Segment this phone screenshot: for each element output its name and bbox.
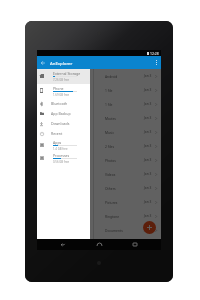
staticText: 2 files bbox=[105, 144, 115, 148]
staticText: Jan 3 bbox=[144, 158, 152, 162]
staticText: 0.56 GB free bbox=[53, 160, 70, 164]
staticText: Photos bbox=[105, 158, 116, 162]
staticText: Jan 3 bbox=[144, 172, 152, 176]
button[interactable]: Back bbox=[57, 239, 69, 250]
button[interactable]: 1 file bbox=[94, 83, 161, 97]
button[interactable]: Pictures bbox=[94, 195, 161, 209]
staticText: Music bbox=[105, 130, 115, 134]
staticText: Jan 3 bbox=[144, 144, 152, 148]
button[interactable]: Recent apps bbox=[129, 239, 141, 250]
staticText: 1 file bbox=[105, 102, 113, 106]
button[interactable]: Videos bbox=[94, 167, 161, 181]
staticText: 1.4 GB free bbox=[53, 147, 68, 151]
staticText: External Storage bbox=[53, 71, 81, 76]
staticText: Jan 3 bbox=[144, 228, 152, 232]
staticText: AnExplorer bbox=[50, 60, 73, 66]
button[interactable]: Movies bbox=[94, 111, 161, 125]
staticText: Jan 3 bbox=[144, 200, 152, 204]
button[interactable]: External Storage bbox=[37, 69, 90, 84]
button[interactable]: Android bbox=[94, 69, 161, 83]
button[interactable]: Navigate up bbox=[37, 56, 49, 69]
staticText: Jan 3 bbox=[144, 214, 152, 218]
staticText: Ringtone bbox=[105, 214, 120, 218]
button[interactable]: Phone bbox=[37, 84, 90, 98]
button[interactable]: 2 files bbox=[94, 139, 161, 153]
staticText: 1.69 GB free bbox=[53, 93, 70, 97]
staticText: Pictures bbox=[105, 200, 118, 204]
button[interactable]: Home bbox=[93, 239, 105, 250]
staticText: Documents bbox=[105, 228, 123, 232]
staticText: Jan 3 bbox=[144, 88, 152, 92]
staticText: App Backup bbox=[51, 111, 71, 116]
button[interactable]: Ringtone bbox=[94, 209, 161, 223]
staticText: 12:28 bbox=[150, 51, 159, 56]
button[interactable]: Recent bbox=[37, 128, 90, 138]
staticText: Bluetooth bbox=[51, 101, 68, 106]
staticText: Jan 3 bbox=[144, 130, 152, 134]
button[interactable]: Photos bbox=[94, 153, 161, 167]
button[interactable]: Downloads bbox=[37, 118, 90, 128]
staticText: Android bbox=[105, 74, 118, 78]
staticText: Others bbox=[105, 186, 116, 190]
button[interactable]: Apps bbox=[37, 138, 90, 151]
staticText: 1 file bbox=[105, 88, 113, 92]
button[interactable]: App Backup bbox=[37, 108, 90, 118]
staticText: Jan 3 bbox=[144, 186, 152, 190]
button[interactable]: Create new bbox=[143, 221, 156, 234]
button[interactable]: More options bbox=[152, 56, 161, 69]
button[interactable]: Bluetooth bbox=[37, 98, 90, 108]
staticText: Processes bbox=[53, 153, 70, 158]
staticText: Apps bbox=[53, 140, 62, 145]
staticText: Jan 3 bbox=[144, 116, 152, 120]
button[interactable]: Documents bbox=[94, 223, 161, 237]
staticText: Jan 3 bbox=[144, 74, 152, 78]
staticText: Phone bbox=[53, 86, 64, 91]
staticText: Jan 3 bbox=[144, 102, 152, 106]
button[interactable]: Others bbox=[94, 181, 161, 195]
staticText: Videos bbox=[105, 172, 116, 176]
staticText: Movies bbox=[105, 116, 116, 120]
button[interactable]: Processes bbox=[37, 151, 90, 164]
button[interactable]: 1 file bbox=[94, 97, 161, 111]
staticText: Recent bbox=[51, 131, 63, 136]
staticText: 7.26 GB free bbox=[53, 78, 70, 82]
staticText: Downloads bbox=[51, 121, 70, 126]
button[interactable]: Music bbox=[94, 125, 161, 139]
